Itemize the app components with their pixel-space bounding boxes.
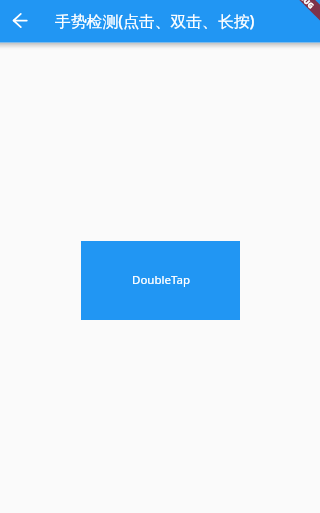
button[interactable]: DoubleTap	[81, 241, 240, 320]
button[interactable]: Back	[0, 0, 40, 42]
staticText: 手势检测(点击、双击、长按)	[55, 10, 255, 32]
staticText: DoubleTap	[132, 272, 190, 288]
